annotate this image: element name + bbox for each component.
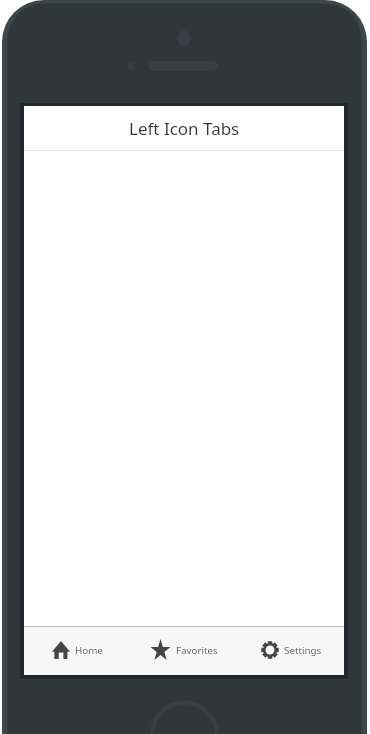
button[interactable]: Settings <box>237 627 344 675</box>
staticText: Favorites <box>176 644 218 657</box>
button[interactable]: Favorites <box>130 627 237 675</box>
staticText: Settings <box>284 644 322 657</box>
staticText: Left Icon Tabs <box>129 117 240 140</box>
staticText: Home <box>75 644 103 657</box>
button[interactable]: Home <box>24 627 130 675</box>
